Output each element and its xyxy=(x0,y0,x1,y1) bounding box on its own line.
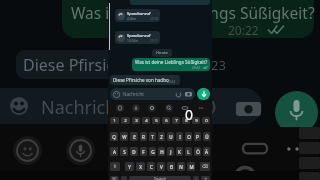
staticText: U xyxy=(169,134,173,140)
staticText: Heute xyxy=(156,50,168,56)
staticText: 20:22 xyxy=(228,22,259,38)
button[interactable]: 4 xyxy=(142,117,150,124)
staticText: . xyxy=(196,177,197,180)
button[interactable]: M xyxy=(187,162,195,171)
button[interactable]: 1 xyxy=(110,117,119,124)
staticText: B xyxy=(170,164,173,170)
button[interactable]: A xyxy=(110,147,118,156)
button[interactable]: Clipboard xyxy=(115,103,124,112)
staticText: 7 xyxy=(175,118,178,124)
staticText: ⇧ xyxy=(113,164,117,169)
other: Attach xyxy=(175,91,182,98)
button[interactable]: 2 xyxy=(121,117,130,124)
button[interactable]: Search xyxy=(164,103,173,112)
button[interactable]: Y xyxy=(125,162,134,171)
staticText: 8 xyxy=(185,118,188,124)
button[interactable]: Was ist deine Lieblings Süßigkeit? xyxy=(132,58,210,71)
button[interactable]: N xyxy=(177,162,185,171)
other: Camera xyxy=(185,91,192,97)
staticText: Y xyxy=(128,164,131,170)
button[interactable]: W xyxy=(120,132,128,141)
staticText: K xyxy=(178,149,181,155)
button[interactable]: P xyxy=(194,132,201,141)
staticText: 5 xyxy=(155,118,158,124)
staticText: H xyxy=(160,149,164,155)
button[interactable]: Ä xyxy=(203,147,210,156)
staticText: I xyxy=(179,134,181,140)
staticText: 23 xyxy=(211,56,226,74)
button[interactable]: 3 xyxy=(132,117,140,124)
button[interactable]: ⌫ xyxy=(200,162,210,171)
button[interactable]: More xyxy=(196,103,205,112)
staticText: G xyxy=(151,149,155,155)
button[interactable]: C xyxy=(147,162,155,171)
staticText: Nachricht xyxy=(41,95,123,120)
button[interactable]: , xyxy=(121,176,127,180)
button[interactable]: 7 xyxy=(172,117,180,124)
button[interactable]: !#1 xyxy=(110,176,119,180)
staticText: 20:22 xyxy=(192,66,201,70)
staticText: Ö xyxy=(196,149,200,155)
button[interactable]: R xyxy=(140,132,147,141)
staticText: S xyxy=(123,149,126,155)
button[interactable]: Sprachanruf xyxy=(115,9,160,22)
button[interactable]: Voice input xyxy=(131,103,140,112)
button[interactable]: 5 xyxy=(152,117,160,124)
button[interactable]: D xyxy=(130,147,138,156)
staticText: Sprachanruf xyxy=(127,33,151,38)
staticText: 20:11 xyxy=(150,39,158,43)
staticText: M xyxy=(189,164,194,170)
button[interactable]: Send voice message xyxy=(197,88,210,100)
button[interactable]: Sprachanruf xyxy=(115,31,160,44)
staticText: A xyxy=(113,149,116,155)
button[interactable]: O xyxy=(185,132,192,141)
button[interactable]: 8 xyxy=(182,117,190,124)
button[interactable]: Diese Pfirsiche von hadbo xyxy=(110,75,180,85)
staticText: 0 xyxy=(205,118,208,124)
button[interactable]: I xyxy=(176,132,183,141)
button[interactable]: 9 xyxy=(192,117,200,124)
staticText: Z xyxy=(160,134,163,140)
staticText: F xyxy=(142,149,145,155)
staticText: Diese Pfirsiche von hadbo xyxy=(113,77,169,83)
button[interactable]: Q xyxy=(110,132,118,141)
staticText: E xyxy=(133,134,136,140)
button[interactable]: 0 xyxy=(202,117,210,124)
button[interactable]: E xyxy=(130,132,138,141)
staticText: 4 xyxy=(145,118,148,124)
button[interactable]: GIF xyxy=(180,103,189,112)
staticText: 6 xyxy=(165,118,168,124)
staticText: 2 xyxy=(124,118,127,124)
button[interactable]: ⇧ xyxy=(110,162,120,171)
button[interactable]: Z xyxy=(158,132,165,141)
staticText: !#1 xyxy=(112,177,117,180)
staticText: ⌫ xyxy=(202,164,208,169)
button[interactable]: B xyxy=(167,162,175,171)
staticText: W xyxy=(122,134,127,140)
button[interactable]: J xyxy=(167,147,174,156)
button[interactable]: Deutsch xyxy=(129,176,191,180)
staticText: 3 xyxy=(135,118,138,124)
button[interactable]: H xyxy=(158,147,165,156)
button[interactable]: V xyxy=(157,162,165,171)
button[interactable]: X xyxy=(136,162,145,171)
button[interactable]: Emoji xyxy=(110,88,195,100)
button[interactable]: L xyxy=(185,147,192,156)
button[interactable]: Ü xyxy=(203,132,210,141)
staticText: R xyxy=(142,134,145,140)
button[interactable]: Ö xyxy=(194,147,201,156)
staticText: D xyxy=(132,149,136,155)
button[interactable]: U xyxy=(167,132,174,141)
button[interactable]: ↵ xyxy=(201,176,210,180)
button[interactable]: 6 xyxy=(162,117,170,124)
button[interactable]: . xyxy=(193,176,199,180)
button[interactable]: Settings xyxy=(147,103,156,112)
button[interactable]: S xyxy=(120,147,128,156)
button[interactable]: T xyxy=(149,132,156,141)
button[interactable]: G xyxy=(149,147,156,156)
button[interactable]: K xyxy=(176,147,183,156)
button[interactable]: F xyxy=(140,147,147,156)
staticText: 4:46m xyxy=(127,17,137,21)
other: Emoji xyxy=(113,91,120,98)
